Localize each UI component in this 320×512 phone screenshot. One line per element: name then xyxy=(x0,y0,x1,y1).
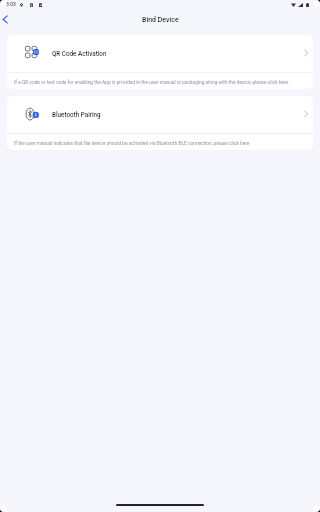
staticText: Bluetooth Pairing xyxy=(52,111,101,118)
staticText: If the user manual indicates that the de… xyxy=(14,141,308,147)
staticText: If a QR code or text code for enabling t… xyxy=(14,80,308,86)
button[interactable]: QR Code Activation xyxy=(7,35,313,89)
staticText: QR Code Activation xyxy=(52,50,107,57)
button[interactable]: Bluetooth Pairing xyxy=(7,96,313,150)
staticText: 3:03 xyxy=(6,1,16,7)
staticText: Bind Device xyxy=(142,16,179,24)
button[interactable]: Back xyxy=(0,7,22,29)
